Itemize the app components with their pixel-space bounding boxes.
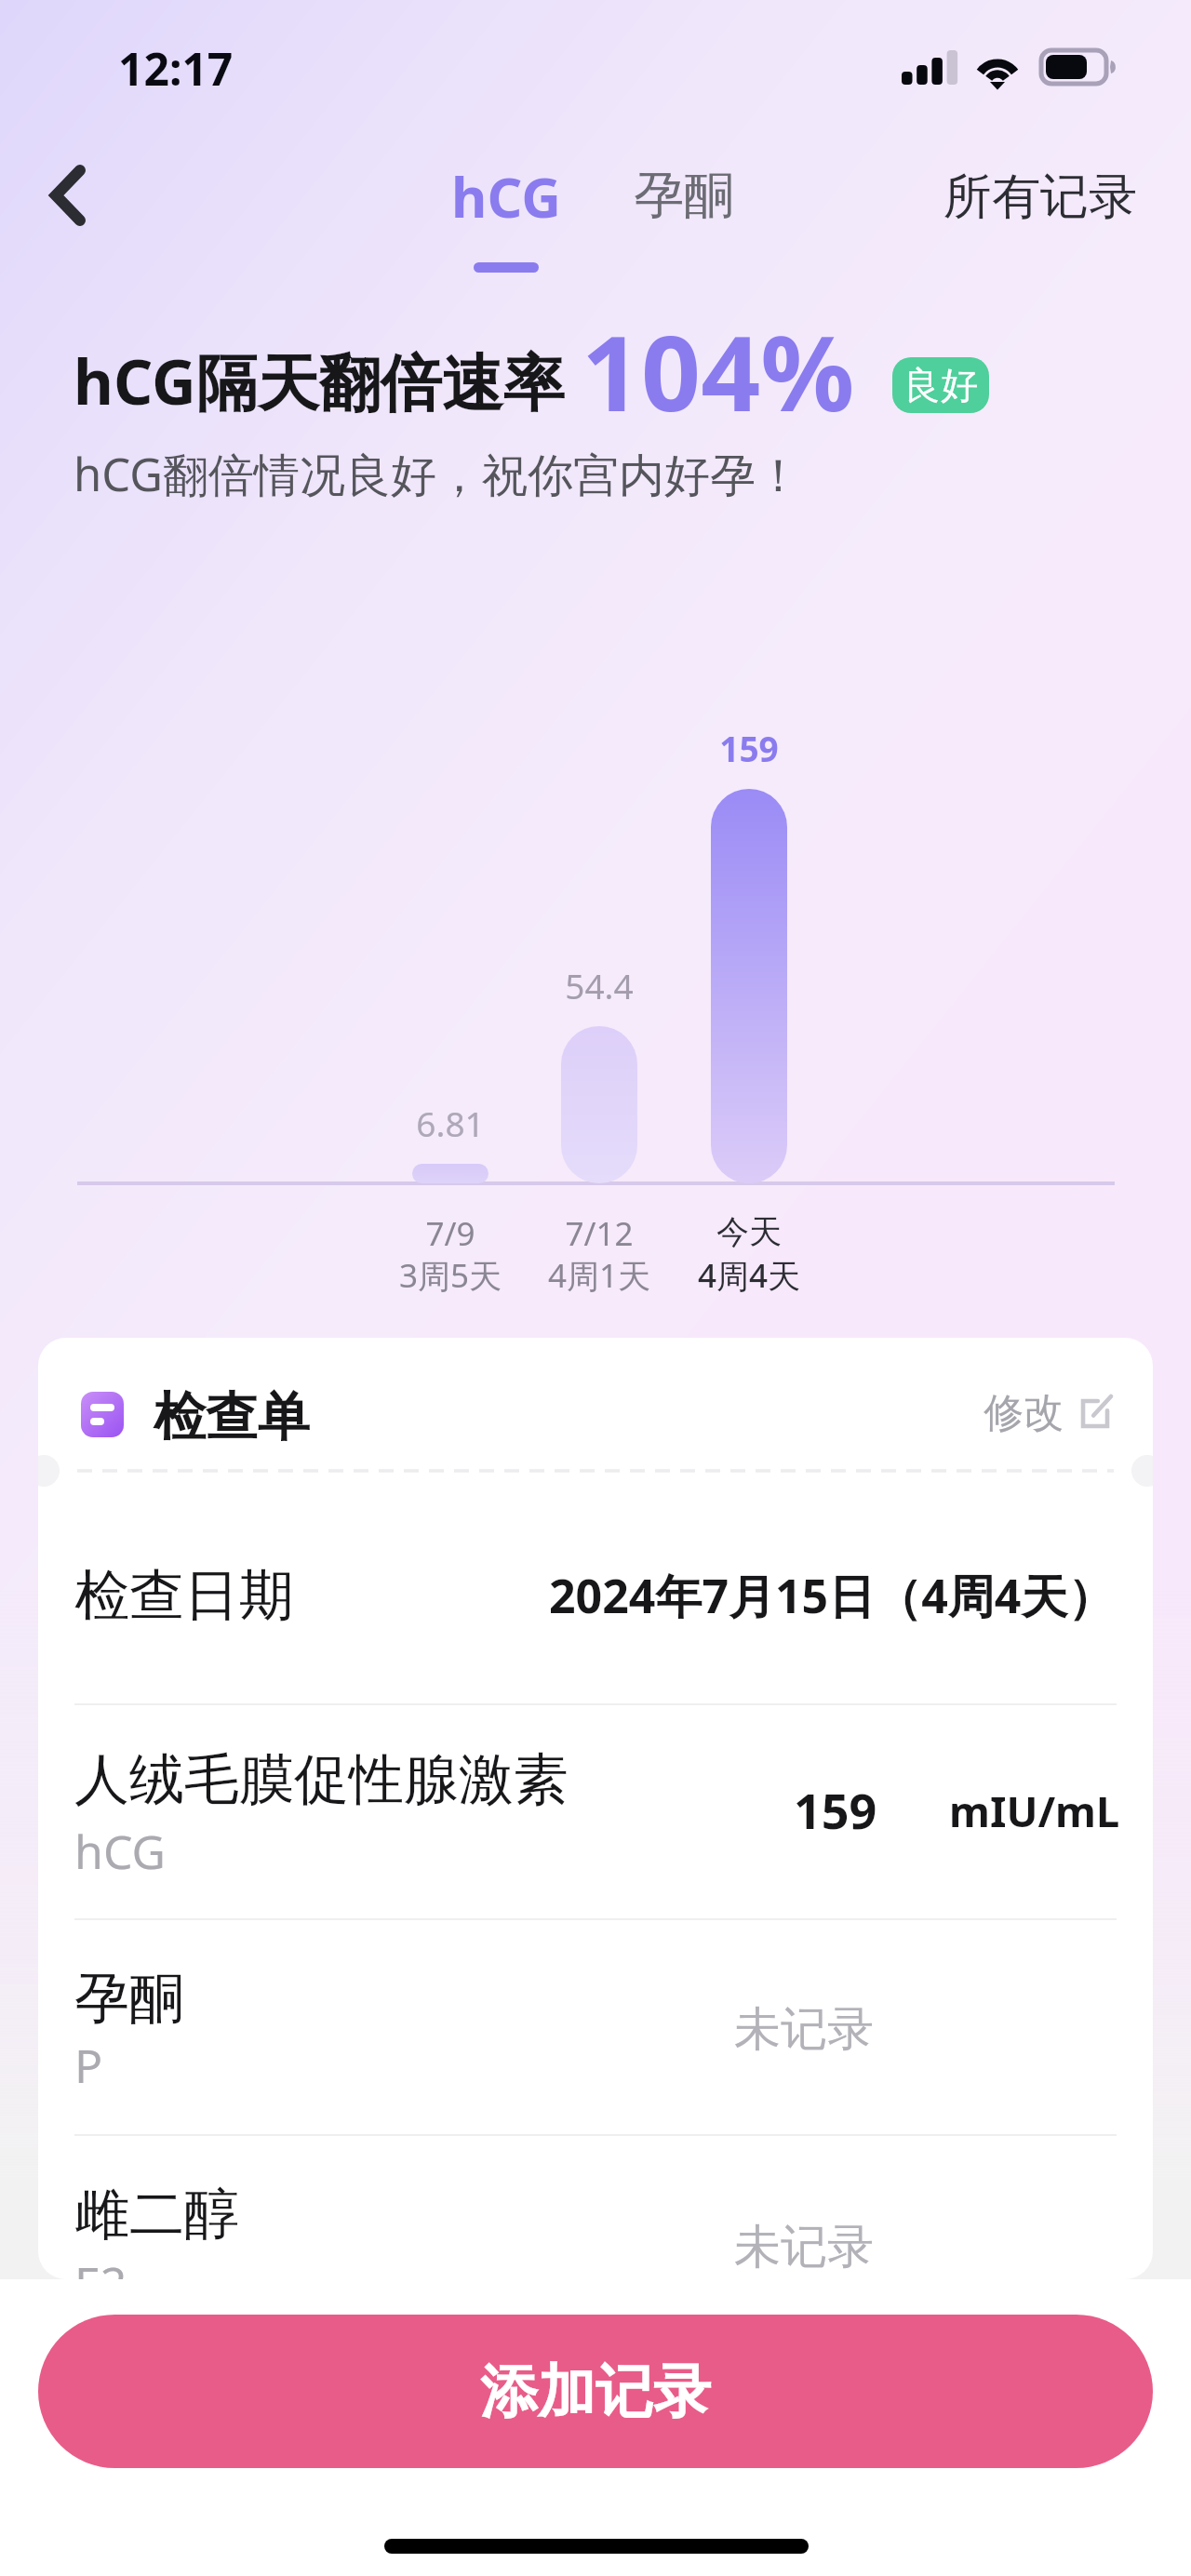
staticText: 未记录: [734, 2218, 874, 2276]
staticText: 添加记录: [480, 2356, 711, 2428]
staticText: 修改: [984, 1388, 1064, 1438]
staticText: 检查单: [154, 1384, 310, 1450]
staticText: mIU/mL: [949, 1782, 1120, 1839]
staticText: hCG: [74, 1820, 166, 1883]
button[interactable]: 检查日期: [74, 1561, 294, 1630]
staticText: 159: [665, 725, 833, 771]
button[interactable]: 人绒毛膜促性腺激素: [74, 1745, 569, 1814]
staticText: 6.81: [367, 1100, 534, 1146]
staticText: 159: [794, 1777, 877, 1843]
staticText: E2: [74, 2251, 127, 2279]
staticText: 所有记录: [943, 167, 1137, 228]
staticText: 孕酮: [634, 164, 734, 227]
button[interactable]: 孕酮: [74, 1964, 184, 2033]
staticText: 良好: [903, 362, 978, 408]
button[interactable]: 所有记录: [943, 167, 1137, 228]
staticText: 2024年7月15日（4周4天）: [549, 1564, 1115, 1627]
button[interactable]: 孕酮: [634, 164, 734, 227]
staticText: 54.4: [515, 962, 683, 1008]
button[interactable]: 检查单: [154, 1384, 310, 1450]
staticText: 今天: [647, 1211, 851, 1252]
staticText: 104%: [582, 300, 855, 442]
staticText: P: [74, 2034, 103, 2097]
button[interactable]: 雌二醇: [74, 2180, 239, 2249]
staticText: hCG翻倍情况良好，祝你宫内好孕！: [74, 443, 801, 505]
button[interactable]: Back: [21, 149, 114, 242]
staticText: 未记录: [734, 2000, 874, 2059]
button[interactable]: 添加记录: [38, 2315, 1153, 2468]
button[interactable]: 修改: [984, 1388, 1110, 1438]
staticText: hCG隔天翻倍速率: [74, 339, 565, 422]
staticText: 7/12: [497, 1211, 702, 1256]
staticText: 7/9: [348, 1211, 553, 1256]
staticText: 4周4天: [647, 1253, 851, 1298]
staticText: hCG: [432, 159, 581, 234]
staticText: 3周5天: [348, 1253, 553, 1298]
staticText: 12:17: [118, 38, 234, 99]
button[interactable]: hCG: [432, 159, 581, 280]
staticText: 4周1天: [497, 1253, 702, 1298]
